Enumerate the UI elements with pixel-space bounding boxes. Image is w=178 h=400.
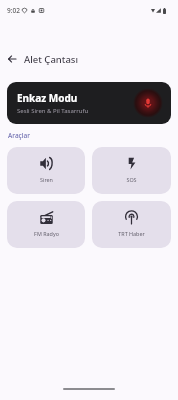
staticText: Alet Çantası [24,53,79,66]
staticText: TRT Haber [118,230,145,237]
staticText: Enkaz Modu [17,91,78,105]
staticText: SOS [126,176,137,183]
button[interactable]: Enkaz Modu [7,82,171,124]
staticText: 9:02 [7,6,20,15]
button[interactable]: Siren [7,147,85,194]
button[interactable]: Back [4,51,20,67]
staticText: Siren [40,176,53,183]
staticText: Sesli Siren & Pil Tasarrufu [17,107,89,115]
staticText: FM Radyo [34,230,59,237]
button[interactable]: SOS [92,147,171,194]
button[interactable]: TRT Haber [92,201,171,248]
staticText: Araçlar [8,131,31,140]
button[interactable]: FM Radyo [7,201,85,248]
